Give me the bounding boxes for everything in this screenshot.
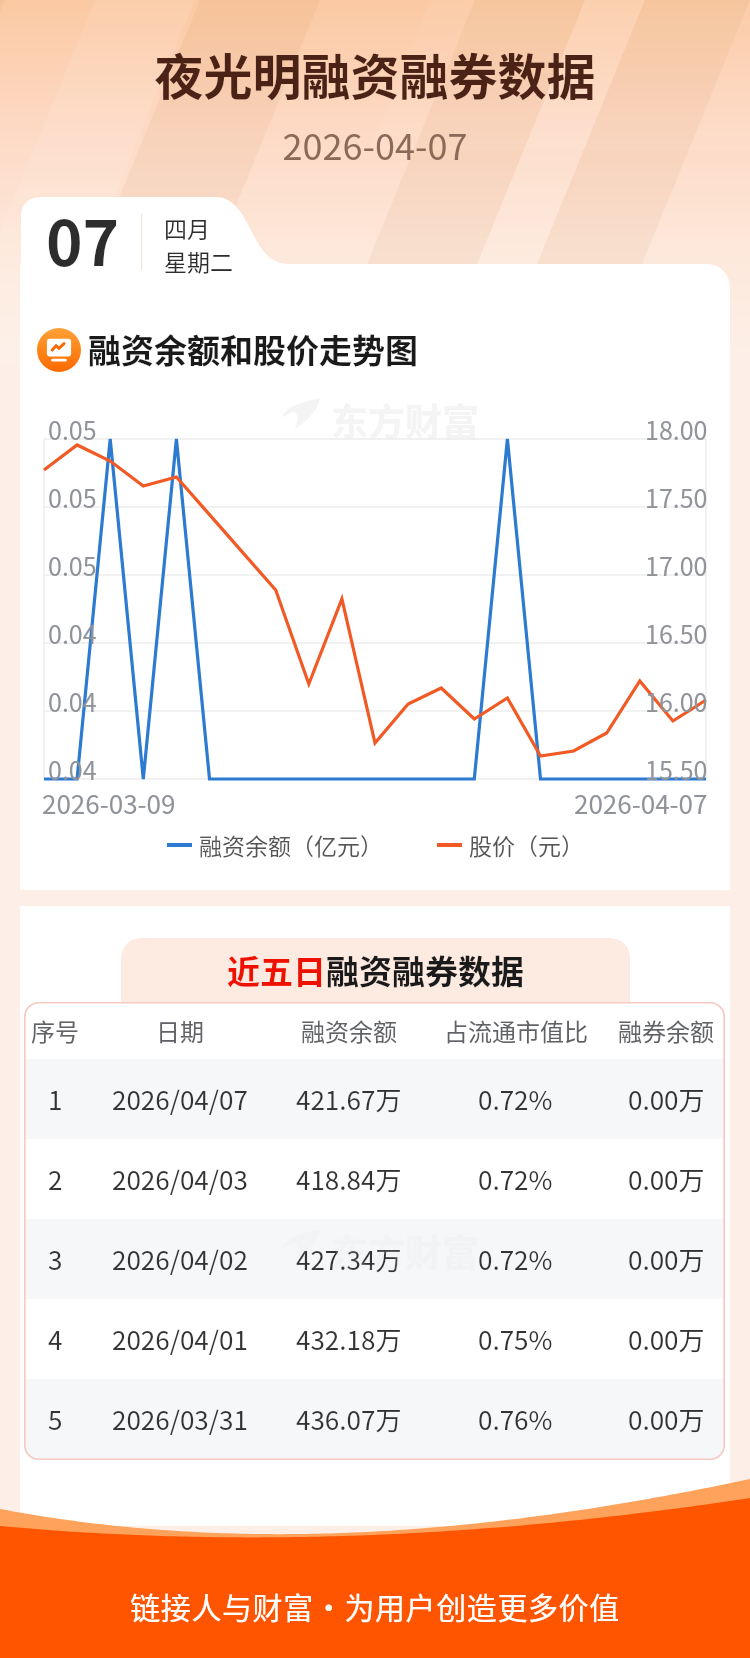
staticText: 3 [48,1240,63,1278]
staticText: 2026-03-09 [42,784,176,822]
staticText: 0.05 [48,479,97,515]
staticText: 2026/04/07 [112,1080,248,1118]
staticText: 0.05 [48,547,97,583]
staticText: 东方财富 [331,393,479,447]
staticText: 18.00 [645,411,708,447]
staticText: 0.75% [478,1320,553,1358]
staticText: 0.04 [48,751,97,787]
staticText: 0.72% [478,1080,553,1118]
staticText: 融资余额（亿元） [199,828,383,861]
staticText: 序号 [31,1013,79,1048]
staticText: 0.00万 [628,1080,705,1118]
button[interactable]: 序号 [24,1002,725,1059]
staticText: 1 [48,1080,63,1118]
staticText: 0.72% [478,1240,553,1278]
staticText: 东方财富 [331,1224,479,1278]
staticText: 17.50 [645,479,708,515]
staticText: 链接人与财富·为用户创造更多价值 [0,1584,750,1627]
staticText: 421.67万 [296,1080,402,1118]
staticText: 2 [48,1160,63,1198]
staticText: 融资余额和股价走势图 [88,325,418,373]
staticText: 15.50 [645,751,708,787]
staticText: 融资余额 [301,1013,397,1048]
button[interactable]: 1 [24,1059,725,1139]
staticText: 融券余额 [618,1013,714,1048]
staticText: 日期 [156,1013,204,1048]
staticText: 0.00万 [628,1240,705,1278]
staticText: 0.00万 [628,1160,705,1198]
staticText: 星期二 [164,244,233,277]
staticText: 16.00 [645,683,708,719]
staticText: 2026/04/01 [112,1320,248,1358]
staticText: 5 [48,1400,63,1438]
staticText: 股价（元） [469,828,584,861]
staticText: 占流通市值比 [444,1013,588,1048]
staticText: 2026/04/02 [112,1240,248,1278]
staticText: 0.72% [478,1160,553,1198]
staticText: 0.04 [48,683,97,719]
staticText: 0.00万 [628,1320,705,1358]
staticText: 07 [46,194,120,284]
staticText: 四月 [164,211,210,244]
button[interactable]: 2 [24,1139,725,1219]
staticText: 2026/03/31 [112,1400,248,1438]
staticText: 418.84万 [296,1160,402,1198]
staticText: 夜光明融资融券数据 [0,38,750,109]
staticText: 0.04 [48,615,97,651]
staticText: 2026-04-07 [0,118,750,170]
staticText: 近五日融资融券数据 [227,946,524,994]
staticText: 436.07万 [296,1400,402,1438]
staticText: 2026/04/03 [112,1160,248,1198]
button[interactable]: 07 [21,198,270,288]
staticText: 4 [48,1320,63,1358]
staticText: 17.00 [645,547,708,583]
staticText: 2026-04-07 [574,784,708,822]
staticText: 0.76% [478,1400,553,1438]
staticText: 432.18万 [296,1320,402,1358]
staticText: 427.34万 [296,1240,402,1278]
button[interactable]: 走势图 [37,328,81,372]
button[interactable]: 3 [24,1219,725,1299]
button[interactable]: 4 [24,1299,725,1379]
button[interactable]: 5 [24,1379,725,1459]
staticText: 16.50 [645,615,708,651]
staticText: 0.00万 [628,1400,705,1438]
staticText: 0.05 [48,411,97,447]
